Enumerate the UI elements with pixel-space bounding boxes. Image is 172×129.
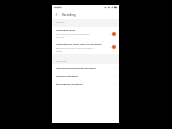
button[interactable]: Automatic saves [52, 27, 119, 40]
staticText: Recordings created by you are added to p… [56, 47, 94, 52]
button[interactable]: Onboard metadata [52, 72, 119, 80]
button[interactable]: Automatically credit Talks you recorded [52, 40, 119, 54]
staticText: GENERAL [56, 21, 65, 24]
staticText: Recordings are saved automatically you s… [56, 33, 90, 38]
button[interactable]: Back [52, 10, 61, 19]
button[interactable]: Edit exposed metadata [52, 80, 119, 88]
staticText: Automatic saves [56, 29, 75, 32]
staticText: Recording [62, 13, 76, 17]
staticText: Edit exposed metadata [56, 83, 114, 86]
staticText: Onboard metadata [56, 75, 114, 78]
staticText: ADVANCED [56, 60, 67, 63]
staticText: Automatically credit Talks you recorded [56, 43, 102, 46]
staticText: Important/Experimental metadata [56, 67, 114, 70]
button[interactable]: Important/Experimental metadata [52, 64, 119, 72]
